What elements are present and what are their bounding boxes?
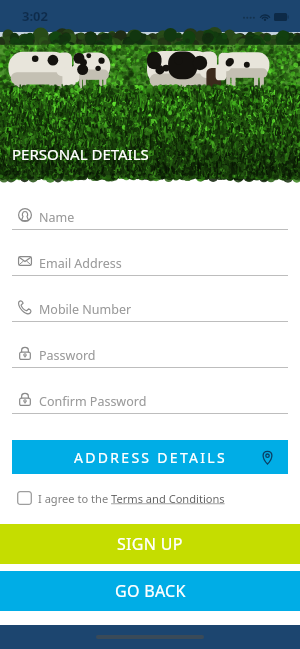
button[interactable]: Email Address <box>0 240 300 275</box>
other: Pick location <box>261 451 274 464</box>
staticText: GO BACK <box>115 580 186 602</box>
staticText: Name <box>39 209 75 226</box>
staticText: Password <box>39 347 96 364</box>
button[interactable]: SIGN UP <box>0 524 300 564</box>
staticText: I agree to the Terms and Conditions <box>38 491 225 506</box>
button[interactable]: GO BACK <box>0 571 300 611</box>
staticText: SIGN UP <box>117 533 183 555</box>
button[interactable]: ADDRESS DETAILS <box>12 440 288 474</box>
button[interactable]: Name <box>0 194 300 229</box>
staticText: Email Address <box>39 255 122 272</box>
button[interactable]: Mobile Number <box>0 286 300 321</box>
staticText: Mobile Number <box>39 301 132 318</box>
staticText: 3:02 <box>22 7 48 25</box>
staticText: Confirm Password <box>39 393 147 410</box>
button[interactable]: I agree to the Terms and Conditions <box>0 490 300 506</box>
button[interactable]: Password <box>0 332 300 367</box>
button[interactable]: Confirm Password <box>0 378 300 413</box>
staticText: PERSONAL DETAILS <box>12 144 149 164</box>
staticText: ADDRESS DETAILS <box>74 448 227 467</box>
